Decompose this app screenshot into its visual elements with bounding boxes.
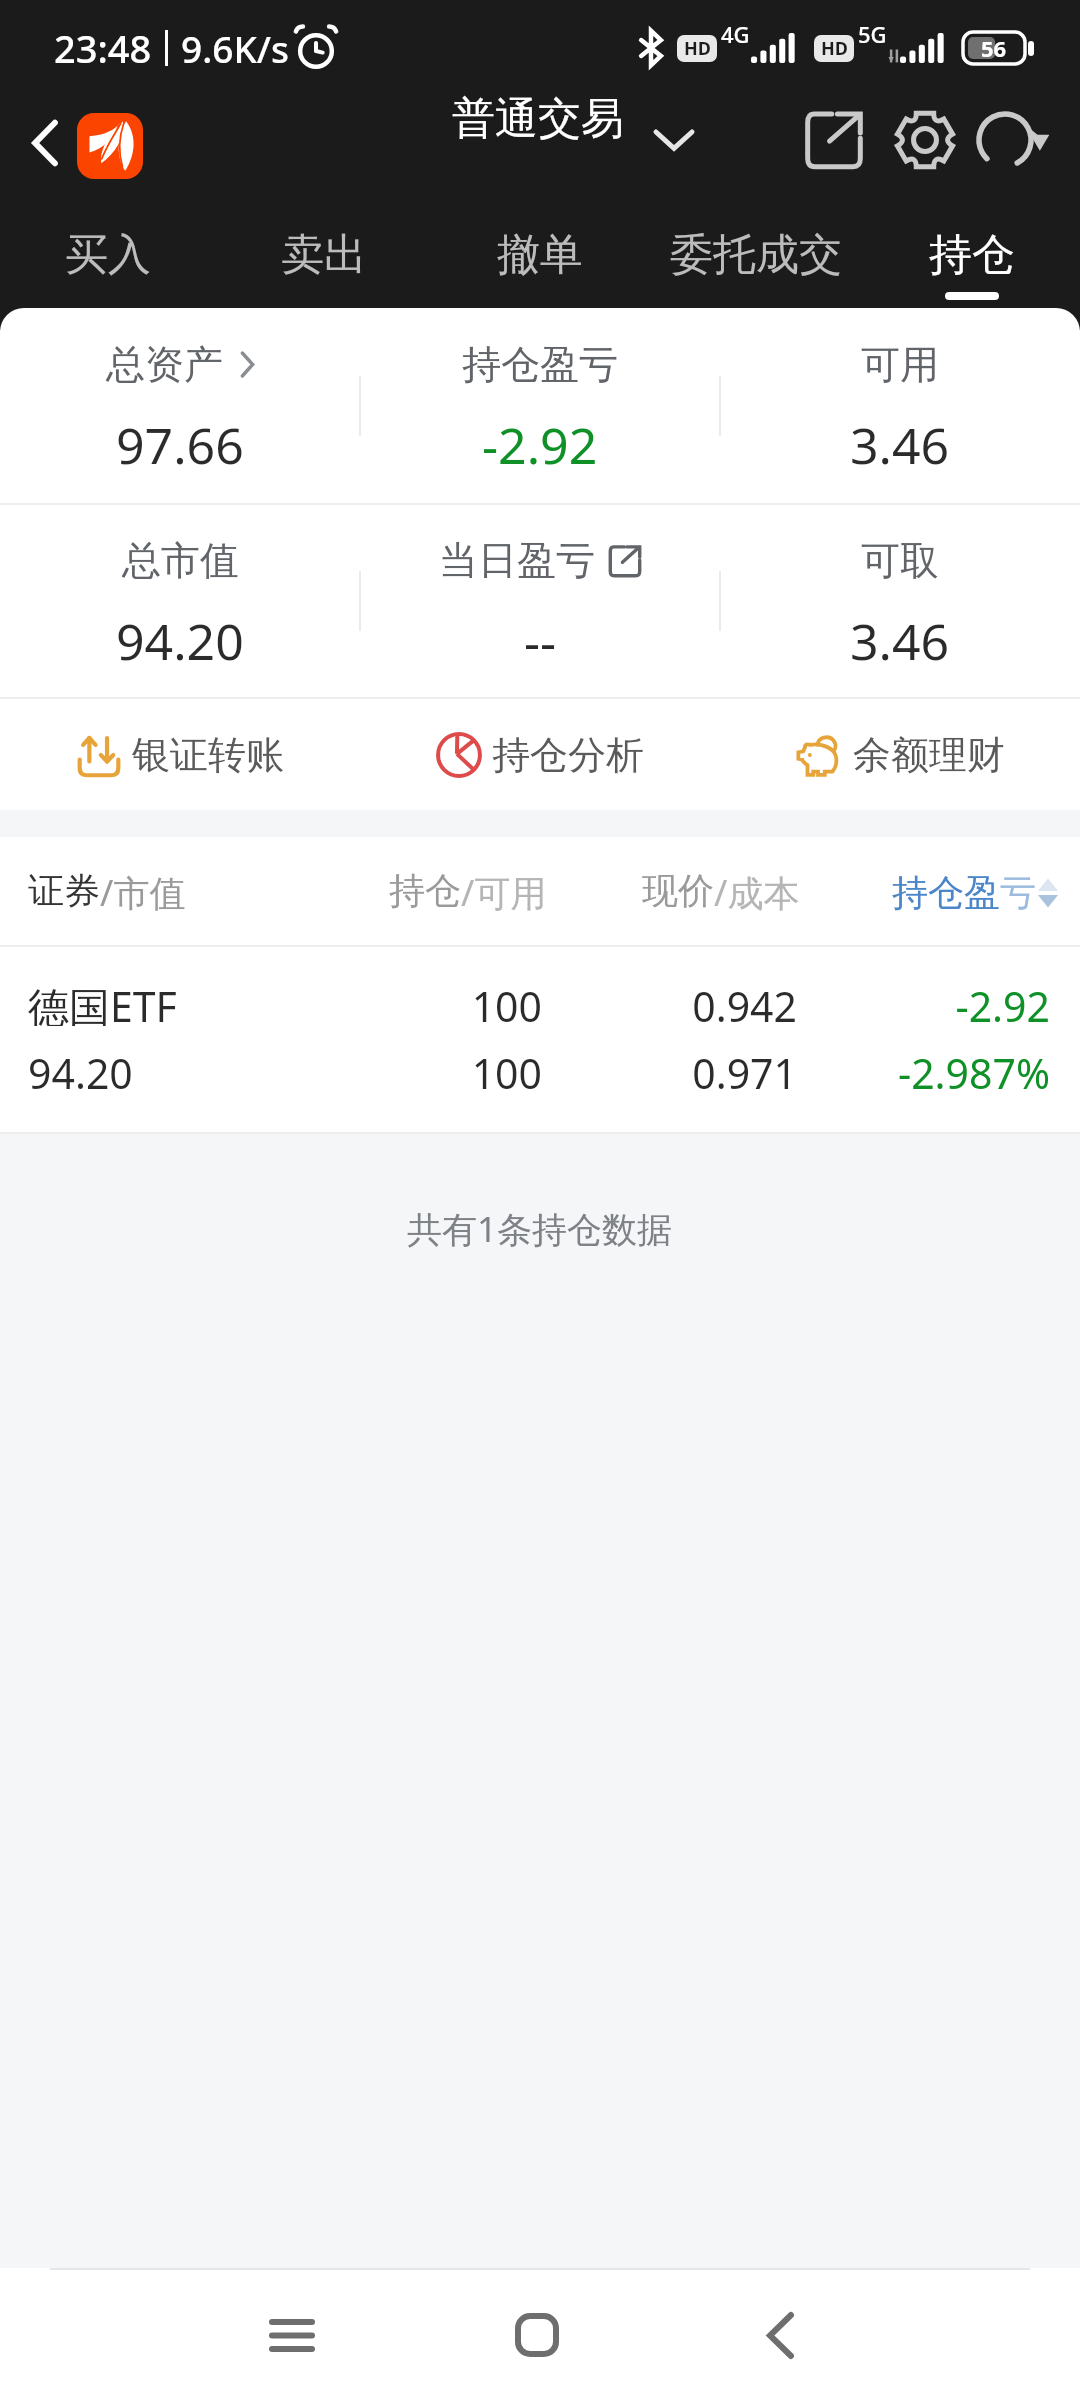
staticText: /成本: [714, 868, 800, 917]
staticText: 97.66: [116, 411, 244, 479]
staticText: HD: [684, 36, 711, 61]
staticText: 撤单: [497, 228, 583, 282]
button[interactable]: 卖出: [216, 210, 432, 300]
button[interactable]: 撤单: [432, 210, 648, 300]
button[interactable]: 总资产: [0, 308, 360, 503]
staticText: 5G: [858, 19, 887, 49]
staticText: 0.971: [557, 1045, 797, 1093]
button[interactable]: 普通交易: [452, 92, 624, 146]
staticText: 持仓: [929, 228, 1015, 282]
button[interactable]: 买入: [0, 210, 216, 300]
staticText: 持仓分析: [492, 731, 644, 779]
staticText: 亏: [1000, 870, 1036, 915]
staticText: 94.20: [116, 607, 244, 675]
staticText: 100: [292, 978, 542, 1026]
staticText: 100: [292, 1045, 542, 1093]
button[interactable]: 余额理财: [720, 699, 1080, 810]
button[interactable]: 银证转账: [0, 699, 360, 810]
staticText: 94.20: [28, 1045, 133, 1093]
staticText: 总市值: [122, 536, 239, 585]
staticText: 现价: [642, 868, 714, 913]
staticText: 持仓盈: [892, 870, 1000, 915]
button[interactable]: Home: [487, 2285, 587, 2385]
staticText: 德国ETF: [28, 978, 177, 1026]
staticText: 银证转账: [132, 731, 284, 779]
button[interactable]: Refresh: [968, 96, 1056, 184]
button[interactable]: 总市值: [0, 505, 360, 697]
staticText: 余额理财: [853, 731, 1005, 779]
staticText: 9.6K/s: [181, 23, 290, 73]
button[interactable]: Settings: [881, 96, 969, 184]
staticText: 3.46: [850, 607, 950, 675]
staticText: /可用: [461, 868, 547, 917]
staticText: 总资产: [106, 340, 223, 389]
button[interactable]: 持仓盈亏: [360, 308, 720, 503]
button[interactable]: Recent apps: [242, 2285, 342, 2385]
staticText: 证券: [28, 868, 100, 913]
button[interactable]: 持仓: [864, 210, 1080, 300]
button[interactable]: 委托成交: [648, 210, 864, 300]
button[interactable]: 可取: [720, 505, 1080, 697]
button[interactable]: 持仓盈: [892, 870, 1060, 915]
staticText: 买入: [65, 228, 151, 282]
staticText: 可取: [861, 536, 939, 585]
staticText: 3.46: [850, 411, 950, 479]
staticText: 卖出: [281, 228, 367, 282]
staticText: HD: [821, 36, 848, 61]
staticText: -2.92: [482, 411, 598, 479]
staticText: 56: [981, 33, 1007, 63]
staticText: -2.987%: [800, 1045, 1050, 1093]
staticText: 可用: [861, 340, 939, 389]
staticText: 持仓盈亏: [462, 340, 618, 389]
staticText: 共有1条持仓数据: [407, 1205, 673, 1253]
staticText: --: [524, 607, 557, 675]
staticText: -2.92: [800, 978, 1050, 1026]
button[interactable]: 德国ETF: [0, 947, 1080, 1134]
staticText: 普通交易: [452, 92, 624, 146]
button[interactable]: Back: [14, 112, 76, 174]
staticText: 委托成交: [670, 228, 842, 282]
button[interactable]: App home: [77, 113, 143, 179]
staticText: 当日盈亏: [439, 536, 595, 585]
staticText: /市值: [100, 868, 186, 917]
staticText: 4G: [721, 19, 750, 49]
button[interactable]: Back: [730, 2285, 830, 2385]
staticText: 0.942: [557, 978, 797, 1026]
button[interactable]: 可用: [720, 308, 1080, 503]
button[interactable]: 当日盈亏: [360, 505, 720, 697]
button[interactable]: Switch account: [646, 120, 702, 160]
staticText: 持仓: [389, 868, 461, 913]
button[interactable]: Share: [790, 96, 878, 184]
staticText: 23:48: [54, 22, 152, 74]
button[interactable]: 持仓分析: [360, 699, 720, 810]
